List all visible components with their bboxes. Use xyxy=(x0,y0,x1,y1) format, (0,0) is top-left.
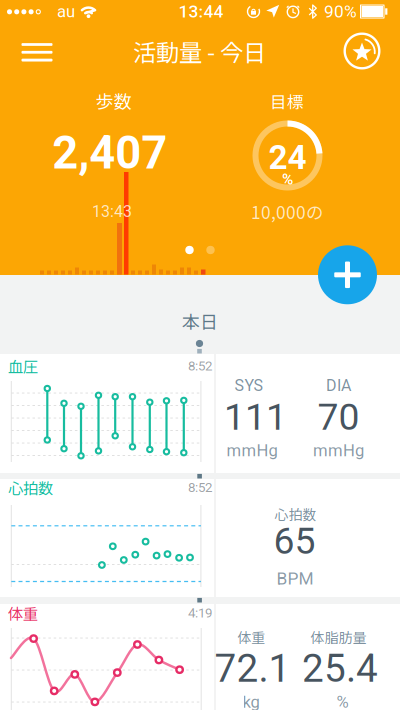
staticText: mmHg xyxy=(226,441,277,460)
staticText: 血圧 xyxy=(8,355,38,377)
button[interactable]: 血圧 xyxy=(0,354,400,473)
staticText: 90% xyxy=(324,1,357,22)
staticText: BPM xyxy=(276,568,313,589)
staticText: 4:19 xyxy=(188,605,212,621)
staticText: DIA xyxy=(326,376,351,395)
staticText: 体重 xyxy=(8,602,38,624)
staticText: mmHg xyxy=(313,441,364,460)
staticText: 活動量 - 今日 xyxy=(133,34,266,68)
staticText: 65 xyxy=(273,519,315,563)
staticText: 13:44 xyxy=(178,1,223,22)
staticText: 目標 xyxy=(270,89,304,113)
staticText: 24 xyxy=(269,138,307,177)
staticText: 10,000の xyxy=(251,199,323,224)
staticText: au xyxy=(57,2,75,21)
staticText: 歩数 xyxy=(95,87,131,114)
staticText: 本日 xyxy=(182,308,218,334)
button[interactable]: 心拍数 xyxy=(0,479,400,597)
button[interactable]: 追加 xyxy=(318,245,377,304)
staticText: 体重 xyxy=(237,627,265,647)
staticText: % xyxy=(336,692,348,710)
button[interactable]: 体重 xyxy=(0,604,400,710)
staticText: kg xyxy=(242,692,259,710)
staticText: 111 xyxy=(224,395,287,439)
staticText: 72.1 xyxy=(214,646,290,691)
staticText: 8:52 xyxy=(188,480,212,495)
staticText: 2,407 xyxy=(52,126,167,179)
button[interactable]: メニュー xyxy=(15,30,59,74)
staticText: 25.4 xyxy=(302,646,378,691)
staticText: % xyxy=(282,170,293,188)
button[interactable]: 実績 xyxy=(340,29,384,73)
staticText: 70 xyxy=(317,395,359,439)
staticText: 体脂肪量 xyxy=(310,627,366,647)
staticText: 8:52 xyxy=(188,358,212,374)
staticText: SYS xyxy=(234,376,263,395)
staticText: 心拍数 xyxy=(274,504,316,524)
staticText: 心拍数 xyxy=(8,476,53,499)
staticText: 13:43 xyxy=(92,202,132,221)
